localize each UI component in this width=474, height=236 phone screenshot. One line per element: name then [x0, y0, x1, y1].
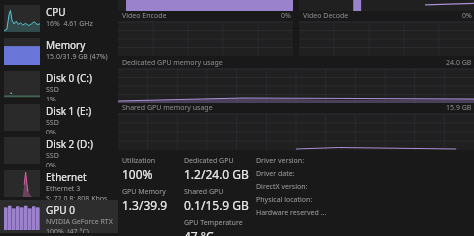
button[interactable]: Disk 1 (E:): [0, 101, 118, 134]
button[interactable]: GPU 0: [0, 200, 118, 233]
staticText: Dedicated GPU memory usage: [122, 58, 223, 68]
staticText: 47 °C: [184, 228, 214, 236]
staticText: GPU Memory: [122, 187, 166, 197]
button[interactable]: Disk 0 (C:): [0, 68, 118, 101]
staticText: Dedicated GPU memory: [184, 156, 252, 166]
staticText: Driver date:: [256, 169, 295, 179]
staticText: Disk 1 (E:): [46, 104, 92, 118]
staticText: S: 72.0 R: 808 Kbps: [46, 194, 108, 200]
staticText: 1%: [46, 95, 56, 101]
staticText: Disk 2 (D:): [46, 137, 93, 151]
staticText: 0%: [46, 161, 56, 167]
staticText: GPU Temperature: [184, 218, 243, 228]
staticText: Ethernet 3: [46, 184, 81, 194]
staticText: 15.9 GB: [446, 103, 472, 113]
staticText: 0%: [462, 11, 472, 21]
staticText: Disk 0 (C:): [46, 71, 92, 85]
staticText: CPU: [46, 5, 66, 19]
staticText: Video Encode: [122, 11, 167, 21]
staticText: 0.1/15.9 GB: [184, 197, 249, 213]
staticText: Physical location:: [256, 195, 313, 205]
button[interactable]: Ethernet: [0, 167, 118, 200]
button[interactable]: Memory: [0, 35, 118, 68]
staticText: SSD: [46, 118, 59, 128]
staticText: 24.0 GB: [446, 58, 472, 68]
staticText: 100% (47 °C): [46, 227, 89, 233]
staticText: 1.3/39.9 GB: [122, 197, 184, 213]
staticText: Utilization: [122, 156, 156, 166]
staticText: 1.2/24.0 GB: [184, 166, 249, 182]
staticText: Driver version:: [256, 156, 305, 166]
staticText: DirectX version:: [256, 182, 308, 192]
staticText: NVIDIA GeForce RTX 40: [46, 217, 118, 227]
staticText: Shared GPU memory: [184, 187, 252, 197]
staticText: SSD: [46, 151, 59, 161]
staticText: Hardware reserved …: [256, 208, 327, 218]
button[interactable]: CPU: [0, 2, 118, 35]
staticText: 0%: [281, 11, 291, 21]
staticText: Memory: [46, 38, 86, 52]
button[interactable]: Disk 2 (D:): [0, 134, 118, 167]
staticText: 0%: [46, 128, 56, 134]
staticText: 100%: [122, 166, 153, 182]
staticText: GPU 0: [46, 203, 75, 217]
staticText: Video Decode: [303, 11, 349, 21]
staticText: Shared GPU memory usage: [122, 103, 213, 113]
staticText: SSD: [46, 85, 59, 95]
staticText: 15.0/31.9 GB (47%): [46, 52, 108, 62]
staticText: 16% 4.61 GHz: [46, 19, 93, 29]
staticText: Ethernet: [46, 170, 87, 184]
